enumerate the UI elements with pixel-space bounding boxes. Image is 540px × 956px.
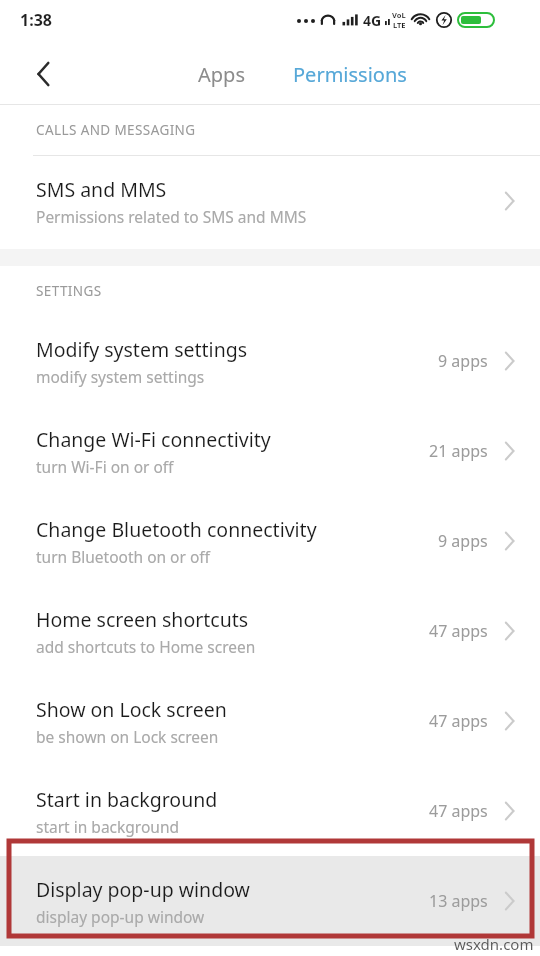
staticText: 47 apps: [429, 620, 488, 642]
button[interactable]: Change Bluetooth connectivity: [0, 496, 540, 586]
staticText: wsxdn.com: [454, 934, 534, 954]
staticText: VoL: [392, 10, 406, 20]
staticText: LTE: [393, 20, 406, 30]
staticText: be shown on Lock screen: [36, 726, 219, 747]
staticText: 47 apps: [429, 800, 488, 822]
button[interactable]: Display pop-up window: [0, 856, 540, 946]
staticText: display pop-up window: [36, 906, 205, 927]
button[interactable]: Home screen shortcuts: [0, 586, 540, 676]
staticText: 1:38: [20, 9, 52, 31]
button[interactable]: Permissions: [287, 57, 413, 92]
staticText: 13 apps: [429, 890, 488, 912]
button[interactable]: SMS and MMS: [0, 156, 540, 246]
button[interactable]: Start in background: [0, 766, 540, 856]
staticText: modify system settings: [36, 366, 205, 387]
staticText: SETTINGS: [36, 282, 102, 300]
staticText: Change Wi-Fi connectivity: [36, 426, 271, 453]
staticText: 9 apps: [438, 530, 488, 552]
staticText: 4G: [363, 11, 382, 30]
staticText: Show on Lock screen: [36, 696, 227, 723]
staticText: turn Wi-Fi on or off: [36, 456, 174, 477]
staticText: turn Bluetooth on or off: [36, 546, 210, 567]
staticText: Permissions related to SMS and MMS: [36, 206, 307, 227]
button[interactable]: Change Wi-Fi connectivity: [0, 406, 540, 496]
button[interactable]: Back: [22, 52, 66, 96]
staticText: start in background: [36, 816, 179, 837]
button[interactable]: Modify system settings: [0, 316, 540, 406]
staticText: Modify system settings: [36, 336, 248, 363]
staticText: Change Bluetooth connectivity: [36, 516, 317, 543]
staticText: 9 apps: [438, 350, 488, 372]
staticText: SMS and MMS: [36, 176, 167, 203]
staticText: Home screen shortcuts: [36, 606, 249, 633]
staticText: CALLS AND MESSAGING: [36, 121, 196, 139]
button[interactable]: Show on Lock screen: [0, 676, 540, 766]
staticText: Permissions: [293, 61, 407, 88]
staticText: add shortcuts to Home screen: [36, 636, 256, 657]
staticText: Apps: [198, 61, 245, 88]
staticText: 47 apps: [429, 710, 488, 732]
button[interactable]: Apps: [192, 57, 251, 92]
staticText: 21 apps: [429, 440, 488, 462]
staticText: Display pop-up window: [36, 876, 250, 903]
staticText: Start in background: [36, 786, 218, 813]
